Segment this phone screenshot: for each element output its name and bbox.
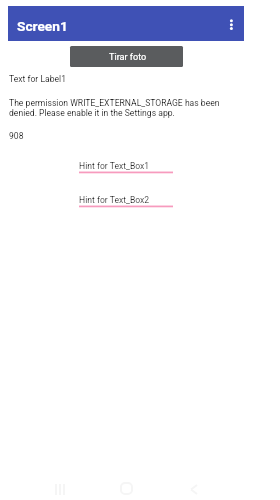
button[interactable]: Hint for Text_Box2	[79, 195, 173, 208]
staticText: Tirar foto	[109, 52, 147, 63]
staticText: 908	[9, 131, 24, 141]
staticText: Hint for Text_Box2	[79, 195, 150, 205]
button[interactable]: More options	[216, 10, 244, 38]
button[interactable]: Hint for Text_Box1	[79, 161, 173, 174]
button[interactable]: Screen1	[8, 6, 244, 41]
staticText: Screen1	[17, 18, 68, 34]
staticText: The permission WRITE_EXTERNAL_STORAGE ha…	[9, 98, 220, 118]
staticText: Hint for Text_Box1	[79, 161, 150, 171]
button[interactable]: Home	[115, 477, 137, 499]
staticText: Text for Label1	[9, 74, 67, 84]
button[interactable]: Tirar foto	[70, 46, 183, 67]
button[interactable]: Recents	[49, 478, 71, 500]
